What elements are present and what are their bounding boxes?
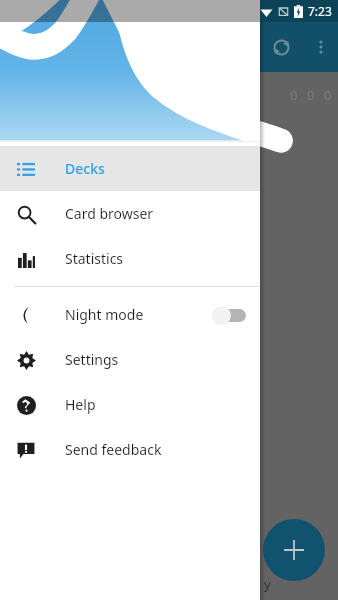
staticText: Card browser: [65, 204, 154, 223]
staticText: Decks: [65, 159, 105, 178]
staticText: Statistics: [65, 249, 124, 268]
staticText: 0: [307, 86, 315, 104]
staticText: 7:23: [308, 3, 332, 19]
staticText: Send feedback: [65, 440, 162, 459]
button[interactable]: More options: [304, 30, 338, 64]
staticText: Night mode: [65, 305, 144, 324]
staticText: 0: [290, 86, 298, 104]
staticText: Settings: [65, 350, 119, 369]
button[interactable]: Night mode: [0, 292, 260, 337]
button[interactable]: Sync: [264, 30, 298, 64]
button[interactable]: Card browser: [0, 191, 260, 236]
button[interactable]: Add: [263, 519, 325, 581]
staticText: 0: [324, 86, 332, 104]
button[interactable]: Send feedback: [0, 427, 260, 472]
button[interactable]: Help: [0, 382, 260, 427]
staticText: Help: [65, 395, 96, 414]
button[interactable]: Settings: [0, 337, 260, 382]
staticText: y: [264, 575, 271, 593]
button[interactable]: Decks: [0, 146, 260, 191]
button[interactable]: Statistics: [0, 236, 260, 281]
